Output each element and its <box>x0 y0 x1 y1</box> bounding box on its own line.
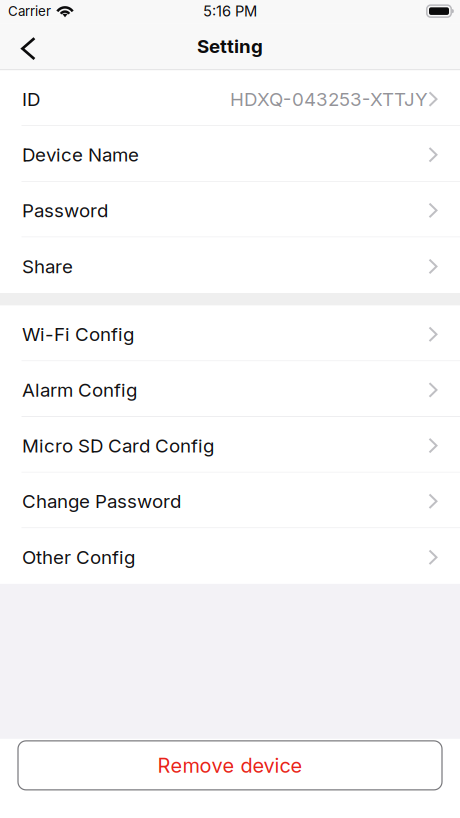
staticText: Setting <box>197 35 263 57</box>
button[interactable]: ID <box>0 70 460 126</box>
staticText: Wi-Fi Config <box>22 323 134 346</box>
button[interactable]: Other Config <box>0 528 460 584</box>
staticText: Remove device <box>157 753 302 777</box>
button[interactable]: Password <box>0 182 460 237</box>
staticText: 5:16 PM <box>203 2 257 20</box>
button[interactable]: Micro SD Card Config <box>0 417 460 472</box>
staticText: Change Password <box>22 490 181 513</box>
button[interactable]: Remove device <box>18 741 442 790</box>
staticText: Carrier <box>8 3 51 19</box>
staticText: HDXQ-043253-XTTJY <box>230 88 428 110</box>
staticText: Password <box>22 199 108 222</box>
button[interactable]: Alarm Config <box>0 361 460 417</box>
button[interactable]: Change Password <box>0 473 460 528</box>
staticText: Share <box>22 255 73 278</box>
button[interactable]: Share <box>0 237 460 293</box>
staticText: Device Name <box>22 143 139 166</box>
staticText: Micro SD Card Config <box>22 434 214 457</box>
button[interactable]: Back <box>0 24 52 68</box>
staticText: ID <box>22 88 40 110</box>
button[interactable]: Device Name <box>0 126 460 182</box>
staticText: Alarm Config <box>22 379 137 401</box>
button[interactable]: Wi-Fi Config <box>0 306 460 361</box>
staticText: Other Config <box>22 546 135 569</box>
